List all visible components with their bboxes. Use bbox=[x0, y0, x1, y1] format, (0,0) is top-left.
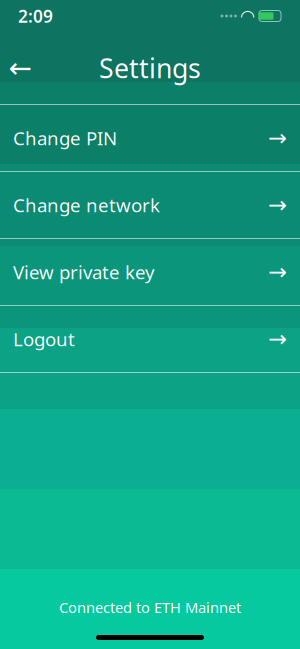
staticText: ← bbox=[8, 52, 31, 84]
staticText: Connected to ETH Mainnet bbox=[59, 597, 241, 617]
staticText: Change PIN bbox=[13, 126, 117, 150]
staticText: 2:09 bbox=[18, 4, 53, 27]
button[interactable]: Logout bbox=[0, 306, 300, 373]
button[interactable]: Back bbox=[0, 48, 40, 88]
staticText: Settings bbox=[99, 50, 201, 86]
staticText: Logout bbox=[13, 327, 75, 351]
staticText: → bbox=[268, 125, 287, 151]
button[interactable]: View private key bbox=[0, 239, 300, 306]
button[interactable]: Change network bbox=[0, 172, 300, 239]
button[interactable]: Change PIN bbox=[0, 105, 300, 172]
staticText: ◠ bbox=[240, 6, 255, 26]
staticText: → bbox=[268, 192, 287, 218]
staticText: View private key bbox=[13, 260, 155, 284]
staticText: → bbox=[268, 326, 287, 352]
staticText: Change network bbox=[13, 193, 160, 217]
staticText: → bbox=[268, 259, 287, 285]
